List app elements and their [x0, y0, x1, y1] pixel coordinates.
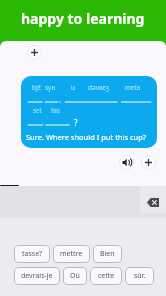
button[interactable]: Où [63, 267, 87, 285]
button[interactable]: Add to notes [141, 155, 156, 170]
staticText: ? [74, 117, 78, 128]
staticText: bjɛ̃ [32, 83, 41, 92]
staticText: u [71, 83, 76, 92]
staticText: sûr. [134, 271, 146, 281]
button[interactable]: devrais-je [14, 267, 60, 285]
staticText: Bien [100, 249, 115, 259]
staticText: happy to learning [21, 9, 145, 28]
staticText: fas [51, 106, 60, 115]
button[interactable]: cette [90, 267, 122, 285]
button[interactable]: Play audio [119, 155, 134, 170]
staticText: Où [70, 271, 80, 281]
button[interactable]: mettre [53, 245, 90, 263]
button[interactable]: tasse? [14, 245, 50, 263]
staticText: cette [98, 271, 115, 281]
staticText: sɛt [33, 106, 42, 115]
button[interactable]: sûr. [125, 267, 154, 285]
button[interactable]: Bien [93, 245, 122, 263]
staticText: tasse? [22, 249, 43, 259]
staticText: mɛtʁ [125, 83, 141, 92]
staticText: Sure. Where should I put this cup? [26, 132, 147, 142]
button[interactable]: Backspace [140, 186, 166, 213]
staticText: mettre [60, 249, 83, 259]
button[interactable]: Add new [27, 45, 42, 60]
button[interactable]: bjɛ̃ [21, 76, 157, 148]
staticText: devrais-je [21, 271, 53, 281]
staticText: syʁ [45, 83, 56, 92]
staticText: dəvʁɛʒ [88, 83, 109, 92]
